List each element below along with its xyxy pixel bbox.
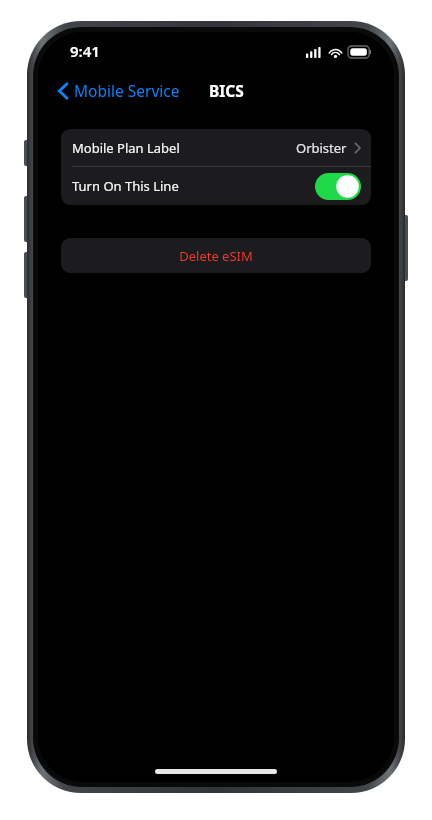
staticText: Orbister [296, 139, 347, 157]
button[interactable]: Turn On This Line [61, 167, 371, 205]
staticText: Turn On This Line [72, 177, 179, 195]
button[interactable]: Mobile Service [38, 76, 188, 105]
staticText: BICS [209, 80, 244, 101]
button[interactable]: Mobile Plan Label [61, 129, 371, 166]
staticText: Mobile Service [74, 80, 180, 101]
staticText: Mobile Plan Label [72, 139, 180, 157]
staticText: Delete eSIM [179, 247, 253, 265]
button[interactable]: Delete eSIM [61, 238, 371, 273]
button[interactable]: Turn On This Line toggle [315, 173, 361, 200]
staticText: 9:41 [70, 41, 100, 61]
